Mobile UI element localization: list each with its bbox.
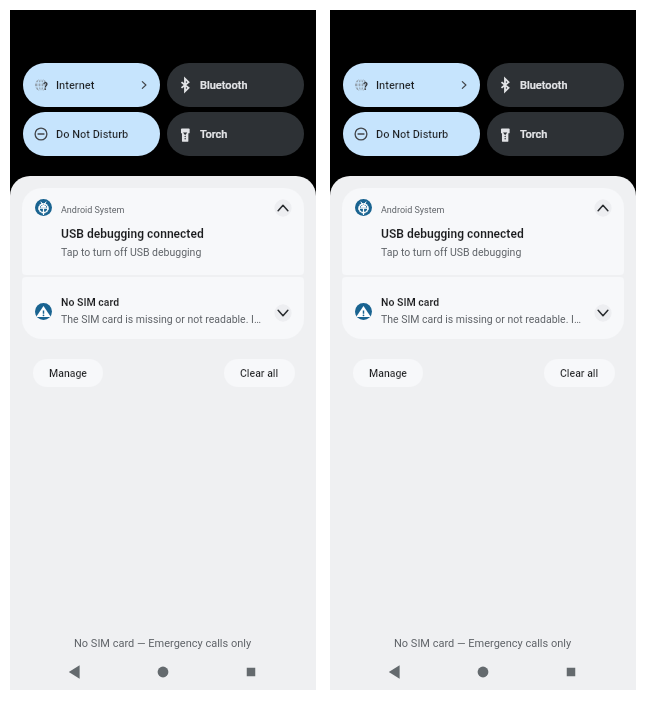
staticText: Android System <box>381 205 445 216</box>
button[interactable]: Recent apps <box>561 662 581 682</box>
staticText: ? <box>43 81 48 93</box>
staticText: Clear all <box>560 367 599 379</box>
button[interactable]: Home <box>153 662 173 682</box>
staticText: No SIM card — Emergency calls only <box>74 637 252 650</box>
staticText: No SIM card <box>381 296 440 308</box>
staticText: No SIM card <box>61 296 120 308</box>
staticText: Manage <box>369 367 407 379</box>
button[interactable]: Torch <box>487 112 624 156</box>
staticText: Do Not Disturb <box>376 128 449 141</box>
staticText: Do Not Disturb <box>56 128 129 141</box>
staticText: Torch <box>520 128 548 141</box>
staticText: The SIM card is missing or not readable.… <box>61 313 261 325</box>
staticText: Manage <box>49 367 87 379</box>
button[interactable]: Manage <box>353 359 423 387</box>
staticText: The SIM card is missing or not readable.… <box>381 313 581 325</box>
button[interactable]: Recent apps <box>241 662 261 682</box>
staticText: Internet <box>56 79 95 92</box>
button[interactable]: Android System <box>342 188 624 275</box>
button[interactable]: Home <box>473 662 493 682</box>
staticText: Torch <box>200 128 228 141</box>
button[interactable]: Collapse notification <box>274 199 292 217</box>
button[interactable]: Clear all <box>224 359 295 387</box>
button[interactable]: No SIM card <box>342 277 624 339</box>
staticText: No SIM card — Emergency calls only <box>394 637 572 650</box>
button[interactable]: No SIM card <box>22 277 304 339</box>
button[interactable]: Back <box>64 662 84 682</box>
button[interactable]: Manage <box>33 359 103 387</box>
button[interactable]: Do Not Disturb <box>343 112 480 156</box>
button[interactable]: Expand notification <box>274 304 292 322</box>
button[interactable]: Back <box>384 662 404 682</box>
button[interactable]: Bluetooth <box>487 63 624 107</box>
button[interactable]: Bluetooth <box>167 63 304 107</box>
staticText: Bluetooth <box>520 79 568 92</box>
button[interactable]: Expand notification <box>594 304 612 322</box>
button[interactable]: Collapse notification <box>594 199 612 217</box>
staticText: USB debugging connected <box>381 227 524 241</box>
staticText: Internet <box>376 79 415 92</box>
button[interactable]: Clear all <box>544 359 615 387</box>
staticText: USB debugging connected <box>61 227 204 241</box>
staticText: Tap to turn off USB debugging <box>61 246 202 258</box>
button[interactable]: ? <box>23 63 160 107</box>
button[interactable]: Torch <box>167 112 304 156</box>
button[interactable]: ? <box>343 63 480 107</box>
staticText: Android System <box>61 205 125 216</box>
button[interactable]: Android System <box>22 188 304 275</box>
staticText: Tap to turn off USB debugging <box>381 246 522 258</box>
button[interactable]: Do Not Disturb <box>23 112 160 156</box>
staticText: ? <box>363 81 368 93</box>
staticText: Bluetooth <box>200 79 248 92</box>
staticText: Clear all <box>240 367 279 379</box>
